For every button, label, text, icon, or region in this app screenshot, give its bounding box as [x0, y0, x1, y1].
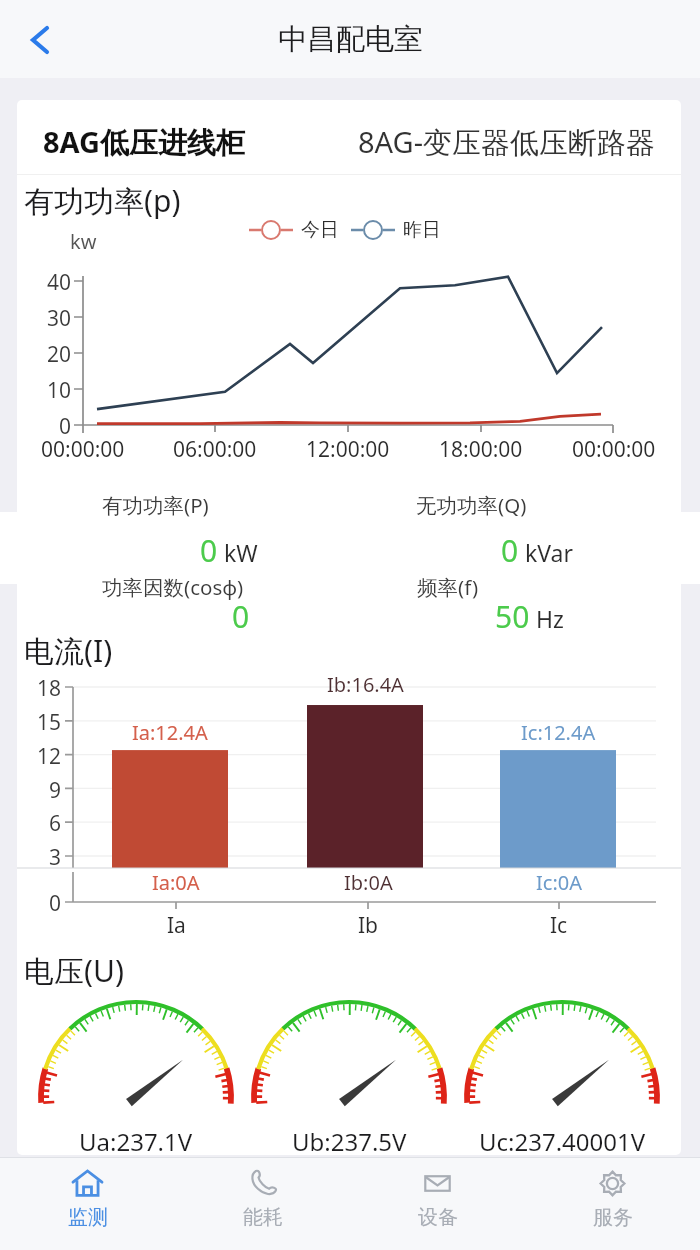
button[interactable]: Services — [525, 1167, 700, 1247]
staticText: 设备 — [418, 1205, 458, 1230]
staticText: 30 — [47, 304, 72, 333]
button[interactable]: Back — [13, 15, 63, 65]
staticText: 0 — [501, 530, 519, 571]
staticText: 电流(I) — [24, 630, 113, 671]
staticText: 中昌配电室 — [278, 21, 423, 58]
staticText: 15 — [37, 708, 62, 737]
staticText: 50 — [495, 596, 530, 637]
staticText: 电压(U) — [24, 950, 124, 991]
staticText: 8AG-变压器低压断路器 — [358, 122, 655, 162]
staticText: kW — [224, 537, 258, 568]
button[interactable]: Monitoring — [0, 1167, 175, 1247]
staticText: Ic — [550, 911, 568, 940]
staticText: 06:00:00 — [173, 435, 257, 464]
staticText: 00:00:00 — [41, 435, 125, 464]
staticText: 服务 — [593, 1205, 633, 1230]
staticText: Ub:237.5V — [292, 1125, 407, 1155]
staticText: 8AG低压进线柜 — [43, 122, 246, 162]
staticText: 6 — [49, 809, 62, 838]
staticText: kVar — [525, 537, 574, 568]
staticText: 12:00:00 — [306, 435, 390, 464]
staticText: Ia — [167, 911, 186, 940]
staticText: 40 — [47, 268, 72, 297]
staticText: 18 — [37, 674, 62, 703]
button[interactable]: Energy — [175, 1167, 350, 1247]
staticText: 12 — [37, 742, 62, 771]
button[interactable]: Devices — [350, 1167, 525, 1247]
staticText: kw — [70, 228, 97, 255]
staticText: 0 — [49, 889, 62, 918]
staticText: 有功功率(P) — [102, 491, 209, 519]
staticText: Ia:12.4A — [132, 719, 208, 746]
staticText: 10 — [47, 376, 72, 405]
staticText: 0 — [232, 596, 250, 637]
staticText: Hz — [536, 603, 564, 634]
staticText: Ic:12.4A — [521, 719, 596, 746]
staticText: 3 — [49, 843, 62, 872]
staticText: Ib:0A — [344, 869, 393, 896]
staticText: 9 — [49, 776, 62, 805]
staticText: 频率(f) — [417, 573, 479, 601]
staticText: 0 — [200, 530, 218, 571]
staticText: Ic:0A — [536, 869, 582, 896]
staticText: Ua:237.1V — [79, 1125, 193, 1155]
staticText: Ia:0A — [152, 869, 200, 896]
staticText: Ib:16.4A — [327, 671, 404, 698]
staticText: 有功功率(p) — [24, 180, 181, 221]
staticText: 今日 — [301, 218, 339, 242]
staticText: 20 — [47, 340, 72, 369]
staticText: 18:00:00 — [439, 435, 523, 464]
staticText: 昨日 — [403, 218, 441, 242]
staticText: 功率因数(cosφ) — [102, 573, 244, 601]
staticText: 00:00:00 — [572, 435, 656, 464]
staticText: 监测 — [68, 1205, 108, 1230]
staticText: Ib — [358, 911, 379, 940]
staticText: 无功功率(Q) — [416, 491, 527, 519]
staticText: 能耗 — [243, 1205, 283, 1230]
staticText: 0 — [59, 412, 72, 441]
staticText: Uc:237.40001V — [479, 1125, 646, 1155]
